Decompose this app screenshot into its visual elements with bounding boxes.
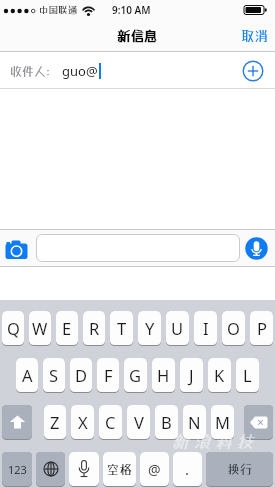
staticText: H [157,364,170,386]
staticText: O [227,317,240,339]
button[interactable]: M [211,405,234,440]
staticText: R [89,317,100,339]
staticText: W [32,317,48,339]
staticText: 9:10 AM [112,3,151,17]
button[interactable]: V [127,405,150,440]
button[interactable]: . [173,452,202,487]
button[interactable]: X [71,405,94,440]
button[interactable]: I [194,311,217,346]
button[interactable] [244,405,273,440]
staticText: 新信息 [117,28,158,44]
staticText: 新浪科技 [172,431,258,451]
button[interactable]: T [110,311,133,346]
staticText: 取消 [241,28,268,44]
button[interactable]: Y [138,311,161,346]
staticText: D [75,364,88,386]
staticText: 换行 [227,462,253,477]
button[interactable] [36,234,240,262]
staticText: G [129,364,142,386]
staticText: A [22,364,33,386]
staticText: . [185,459,190,479]
staticText: T [117,317,127,339]
staticText: L [243,364,252,386]
staticText: guo@ [62,62,98,80]
staticText: S [49,364,59,386]
staticText: B [161,411,172,433]
button[interactable]: 换行 [206,452,273,487]
button[interactable]: R [83,311,105,346]
button[interactable] [69,452,99,487]
button[interactable]: H [152,358,175,393]
button[interactable]: 123 [2,452,32,487]
button[interactable]: @ [140,452,169,487]
button[interactable]: E [56,311,78,346]
staticText: C [105,411,116,433]
button[interactable] [242,60,264,82]
staticText: I [203,317,209,339]
staticText: F [104,364,113,386]
button[interactable] [36,452,65,487]
button[interactable]: K [208,358,231,393]
staticText: K [214,364,225,386]
staticText: 123 [8,462,27,477]
staticText: N [188,411,201,433]
staticText: U [171,317,184,339]
staticText: E [62,317,72,339]
button[interactable]: P [250,311,273,346]
staticText: @ [148,460,161,479]
button[interactable]: S [43,358,65,393]
button[interactable]: 取消 [241,28,268,44]
button[interactable]: Z [44,405,66,440]
button[interactable]: D [70,358,92,393]
button[interactable]: L [236,358,259,393]
button[interactable] [5,239,30,261]
button[interactable]: N [183,405,206,440]
staticText: 空格 [107,462,133,477]
button[interactable] [245,237,268,260]
button[interactable] [2,405,32,440]
staticText: V [134,411,144,433]
staticText: Z [50,411,60,433]
staticText: X [78,411,88,433]
button[interactable]: W [29,311,51,346]
staticText: 收件人: [10,64,51,78]
button[interactable]: F [97,358,119,393]
staticText: Y [145,317,155,339]
button[interactable]: C [99,405,122,440]
staticText: Q [7,317,20,339]
button[interactable]: A [16,358,38,393]
button[interactable]: U [166,311,189,346]
button[interactable]: 收件人: [0,52,275,89]
button[interactable]: 空格 [103,452,136,487]
button[interactable]: Q [2,311,24,346]
staticText: 中国联通 [39,5,78,16]
staticText: J [189,364,194,386]
button[interactable]: O [222,311,245,346]
staticText: M [215,411,230,433]
button[interactable]: G [124,358,147,393]
button[interactable]: B [155,405,178,440]
button[interactable]: J [180,358,203,393]
staticText: P [257,317,267,339]
